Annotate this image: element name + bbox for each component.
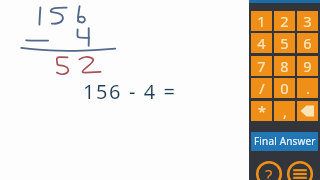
staticText: 6 [303,33,312,53]
staticText: 156 - 4 = [83,78,177,105]
button[interactable]: 6 [297,33,318,53]
staticText: 3 [303,11,312,31]
button[interactable]: 8 [274,56,295,76]
staticText: * [258,101,266,121]
button[interactable]: 2 [274,11,295,31]
button[interactable]: 1 [251,11,272,31]
staticText: 9 [303,56,312,76]
staticText: 7 [257,56,266,76]
staticText: 8 [280,56,289,76]
button[interactable]: 3 [297,11,318,31]
button[interactable]: 5 [274,33,295,53]
button[interactable]: Final Answer [251,132,318,151]
staticText: ? [265,164,273,180]
button[interactable]: 7 [251,56,272,76]
button[interactable]: 4 [251,33,272,53]
staticText: 1 [257,11,266,31]
staticText: 2 [280,11,289,31]
button[interactable]: , [274,101,295,121]
staticText: 5 [280,33,289,53]
button[interactable]: Backspace [297,101,318,121]
button[interactable]: * [251,101,272,121]
button[interactable]: 0 [274,78,295,98]
button[interactable]: 9 [297,56,318,76]
button[interactable]: / [251,78,272,98]
button[interactable]: Menu [287,161,313,180]
button[interactable]: Help [256,161,282,180]
button[interactable]: . [297,78,318,98]
staticText: 4 [257,33,266,53]
staticText: . [306,78,310,98]
staticText: 0 [280,78,289,98]
staticText: Final Answer [254,134,316,148]
staticText: / [259,78,265,98]
staticText: , [283,101,287,121]
